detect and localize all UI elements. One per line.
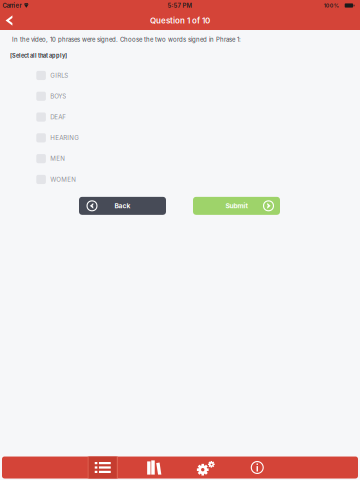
button[interactable]: Settings <box>180 456 231 478</box>
staticText: Submit <box>225 202 247 210</box>
staticText: Carrier <box>3 2 22 9</box>
button[interactable]: Questions <box>77 456 128 478</box>
staticText: DEAF <box>50 113 66 121</box>
button[interactable]: MEN <box>0 148 360 169</box>
staticText: In the video, 10 phrases were signed. Ch… <box>12 36 241 43</box>
button[interactable]: DEAF <box>0 107 360 127</box>
button[interactable]: GIRLS <box>0 65 360 86</box>
staticText: Question 1 of 10 <box>150 16 210 25</box>
staticText: MEN <box>50 155 65 162</box>
staticText: Back <box>114 202 130 210</box>
staticText: WOMEN <box>50 176 76 183</box>
staticText: [Select all that apply] <box>10 52 67 59</box>
button[interactable]: Back <box>2 11 16 29</box>
button[interactable]: Back <box>79 197 166 215</box>
button[interactable]: WOMEN <box>0 169 360 190</box>
button[interactable]: HEARING <box>0 127 360 148</box>
button[interactable]: Library <box>128 456 180 478</box>
button[interactable]: BOYS <box>0 86 360 107</box>
staticText: HEARING <box>50 134 79 141</box>
staticText: 100% <box>324 2 339 9</box>
button[interactable]: Info <box>231 456 283 478</box>
button[interactable]: Submit <box>193 197 280 215</box>
staticText: BOYS <box>50 92 66 100</box>
staticText: 5:57 PM <box>167 2 192 9</box>
staticText: GIRLS <box>50 72 68 79</box>
